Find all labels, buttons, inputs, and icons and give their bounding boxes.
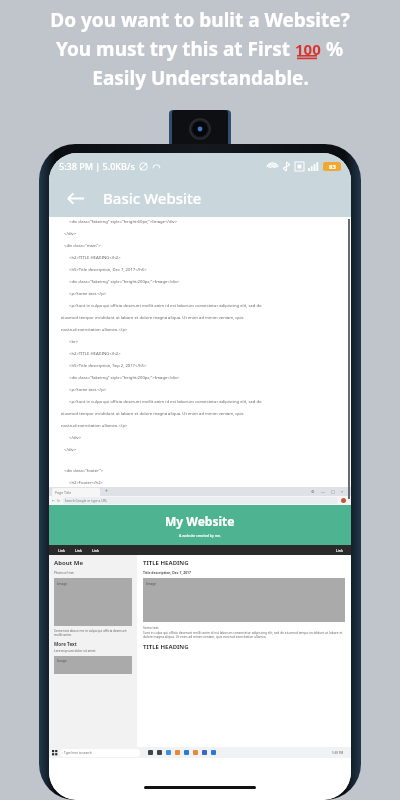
staticText: ← ↻ — [52, 498, 60, 503]
button[interactable]: Link — [75, 548, 82, 553]
staticText: <h2>Footer</h2> — [69, 480, 103, 486]
staticText: nostrud exercitation ullamco.</p> — [61, 327, 128, 333]
staticText: TITLE HEADING — [143, 559, 189, 567]
button[interactable]: Link — [58, 548, 65, 553]
staticText: <h2>TITLE HEADING</h2> — [69, 255, 121, 261]
staticText: Some text about me in culpa qui officia … — [54, 629, 132, 637]
staticText: <div class="fakeimg" style="height:200px… — [69, 375, 180, 381]
staticText: % — [321, 36, 344, 62]
staticText: 5:38 PM | 5.0KB/s — [59, 160, 135, 172]
staticText: <div class="footer"> — [64, 468, 104, 474]
staticText: eiusmod tempor incididunt ut labore et d… — [61, 315, 244, 321]
staticText: <p>Some text.</p> — [69, 291, 107, 297]
staticText: Search Google or type a URL — [63, 499, 108, 503]
staticText: </div> — [64, 447, 77, 453]
staticText: Basic Website — [103, 188, 202, 208]
staticText: <p>Sunt in culpa qui officia deserunt mo… — [69, 399, 262, 405]
staticText: <h2>TITLE HEADING</h2> — [69, 351, 121, 357]
staticText: Image — [57, 581, 68, 586]
staticText: Link — [58, 548, 65, 553]
staticText: Title description, Dec 7, 2017 — [143, 570, 191, 575]
staticText: Photo of me: — [54, 570, 75, 575]
staticText: + — [105, 488, 108, 495]
staticText: TITLE HEADING — [143, 643, 189, 651]
staticText: About Me — [54, 559, 83, 567]
staticText: Link — [75, 548, 82, 553]
staticText: Easily Understandable. — [92, 65, 309, 91]
staticText: <p>Some text.</p> — [69, 387, 107, 393]
staticText: More Text — [54, 641, 77, 647]
staticText: Image — [57, 659, 67, 663]
staticText: <h5>Title description, Sep 2, 2017</h5> — [69, 363, 147, 369]
staticText: Link — [92, 548, 99, 553]
staticText: My Website — [165, 513, 235, 529]
staticText: 5:38 PM — [332, 751, 344, 755]
staticText: <h5>Title description, Dec 7, 2017</h5> — [69, 267, 147, 273]
staticText: Link — [336, 548, 343, 553]
staticText: <br> — [69, 339, 79, 345]
staticText: <div class="main"> — [64, 243, 101, 249]
staticText: <p>Sunt in culpa qui officia deserunt mo… — [69, 303, 262, 309]
staticText: Do you want to bulit a Website? — [50, 7, 350, 33]
staticText: × — [341, 489, 344, 494]
staticText: eiusmod tempor incididunt ut labore et d… — [61, 411, 244, 417]
staticText: Lorem ipsum dolor sit amet. — [54, 649, 97, 653]
staticText: Sunt in culpa qui officia deserunt molli… — [143, 631, 345, 639]
staticText: 100 — [295, 39, 321, 59]
staticText: A website created by me. — [179, 533, 222, 538]
staticText: </div> — [69, 435, 82, 441]
staticText: ⚙ — [311, 489, 315, 494]
staticText: nostrud exercitation ullamco.</p> — [61, 423, 128, 429]
staticText: □ — [331, 489, 335, 494]
staticText: ⌕ Type here to search — [60, 751, 92, 755]
button[interactable]: Link — [92, 548, 99, 553]
staticText: <div class="fakeimg" style="height:60px;… — [69, 219, 178, 225]
button[interactable]: Link — [336, 548, 343, 553]
staticText: 83 — [329, 163, 336, 171]
button[interactable]: Back — [59, 182, 91, 214]
staticText: — — [321, 489, 325, 494]
staticText: Page Title — [55, 490, 72, 495]
staticText: Some text. — [143, 625, 160, 629]
staticText: </div> — [64, 231, 77, 237]
staticText: Image — [146, 581, 157, 586]
staticText: You must try this at First — [56, 36, 295, 62]
staticText: <div class="fakeimg" style="height:200px… — [69, 279, 180, 285]
